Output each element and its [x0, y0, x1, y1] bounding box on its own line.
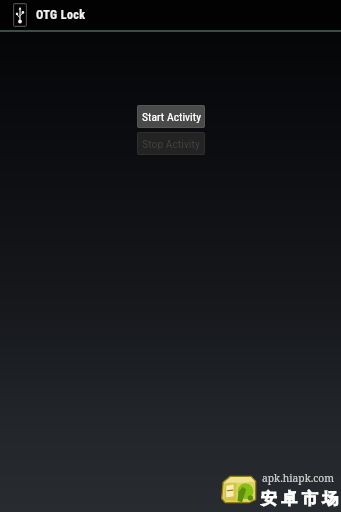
- other: USB: [13, 3, 27, 27]
- staticText: Start Activity: [142, 110, 201, 124]
- staticText: OTG Lock: [36, 8, 86, 22]
- button[interactable]: Stop Activity: [137, 132, 205, 155]
- button[interactable]: Start Activity: [137, 105, 205, 128]
- staticText: apk.hiapk.com: [262, 471, 335, 485]
- button[interactable]: USB: [0, 0, 99, 30]
- staticText: Stop Activity: [142, 137, 200, 151]
- staticText: 安卓市场: [261, 489, 341, 509]
